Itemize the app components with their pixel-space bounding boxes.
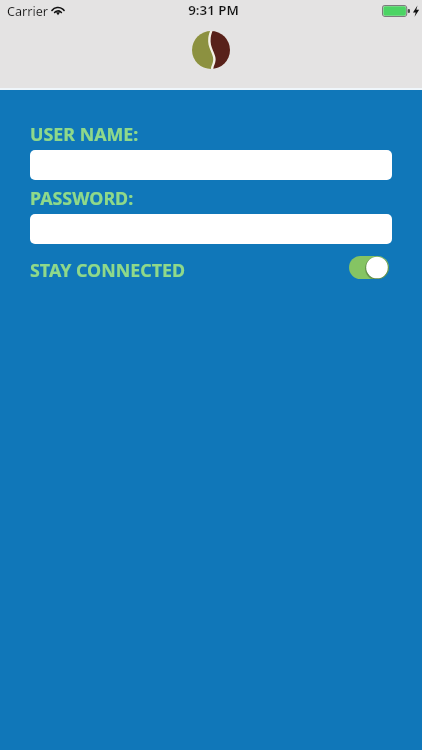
button[interactable]: Password input field bbox=[30, 214, 392, 244]
button[interactable]: App logo bbox=[192, 31, 230, 69]
staticText: STAY CONNECTED bbox=[30, 258, 185, 282]
other: Wi-Fi signal bbox=[49, 4, 67, 16]
other: Battery charging bbox=[382, 5, 418, 17]
button[interactable]: STAY CONNECTED bbox=[0, 252, 422, 284]
button[interactable]: Stay connected, on bbox=[349, 256, 389, 279]
staticText: 9:31 PM bbox=[188, 1, 239, 19]
staticText: USER NAME: bbox=[30, 122, 139, 146]
staticText: PASSWORD: bbox=[30, 186, 134, 210]
staticText: Carrier bbox=[7, 3, 48, 20]
button[interactable]: User name input field bbox=[30, 150, 392, 180]
